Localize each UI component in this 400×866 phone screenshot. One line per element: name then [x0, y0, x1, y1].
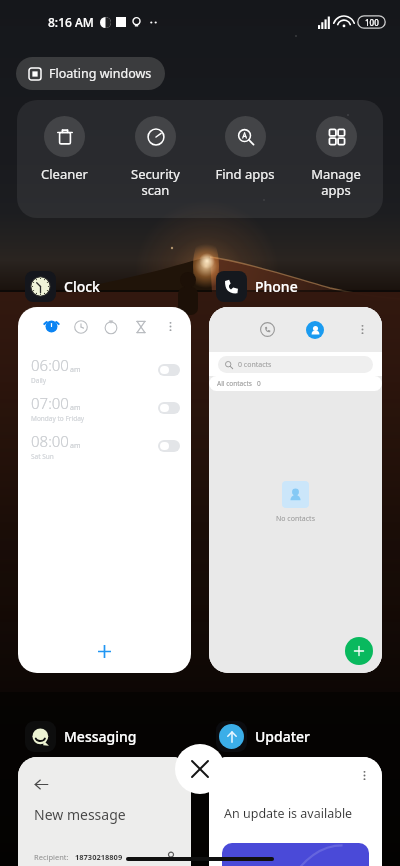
- staticText: All contacts: [217, 379, 252, 388]
- staticText: Floating windows: [49, 65, 152, 82]
- staticText: 06:00: [31, 355, 69, 375]
- button[interactable]: Add contact: [345, 637, 373, 665]
- staticText: Clock: [64, 277, 100, 296]
- staticText: Recipient:: [34, 852, 69, 862]
- button[interactable]: Close all apps: [175, 744, 225, 794]
- staticText: 08:00: [31, 431, 69, 451]
- staticText: Manage apps: [311, 165, 361, 198]
- staticText: 18730218809: [75, 852, 123, 862]
- button[interactable]: Updater: [209, 721, 311, 752]
- button[interactable]: Floating windows: [16, 57, 165, 90]
- button[interactable]: New message: [18, 757, 191, 866]
- staticText: 07:00: [31, 393, 69, 413]
- staticText: am: [70, 441, 81, 451]
- staticText: Messaging: [64, 727, 137, 746]
- button[interactable]: An update is available: [209, 757, 382, 866]
- staticText: Find apps: [215, 165, 275, 183]
- button[interactable]: Clock: [18, 271, 100, 302]
- staticText: Monday to Friday: [31, 414, 85, 423]
- button[interactable]: Find apps: [201, 100, 289, 218]
- button[interactable]: Security scan: [111, 100, 199, 218]
- staticText: 100: [365, 17, 379, 28]
- staticText: 0: [257, 379, 261, 388]
- button[interactable]: Manage apps: [292, 100, 380, 218]
- button[interactable]: 0 contacts: [209, 307, 382, 673]
- staticText: Updater: [255, 727, 311, 746]
- button[interactable]: Phone: [209, 271, 298, 302]
- button[interactable]: [158, 364, 180, 376]
- button[interactable]: [158, 440, 180, 452]
- button[interactable]: 0 contacts: [218, 356, 373, 373]
- staticText: New message: [34, 805, 126, 824]
- staticText: am: [70, 403, 81, 413]
- staticText: An update is available: [224, 805, 353, 822]
- staticText: Sat Sun: [31, 452, 54, 461]
- button[interactable]: 06:00: [18, 307, 191, 673]
- staticText: No contacts: [276, 514, 315, 524]
- staticText: Phone: [255, 277, 298, 296]
- staticText: Cleaner: [41, 165, 88, 183]
- staticText: 0 contacts: [238, 360, 272, 370]
- staticText: Daily: [31, 376, 47, 385]
- button[interactable]: [158, 402, 180, 414]
- staticText: am: [70, 365, 81, 375]
- staticText: 8:16 AM: [48, 14, 94, 30]
- staticText: Security scan: [131, 165, 180, 198]
- button[interactable]: Messaging: [18, 721, 137, 752]
- button[interactable]: Cleaner: [20, 100, 108, 218]
